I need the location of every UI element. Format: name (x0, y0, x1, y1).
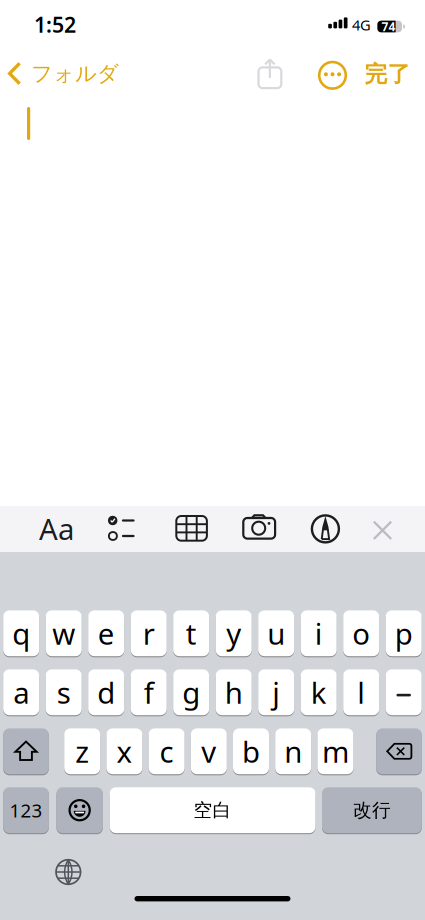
staticText: b (242, 732, 260, 771)
staticText: n (284, 732, 302, 771)
button[interactable]: r (131, 609, 167, 657)
button[interactable]: 完了 (364, 60, 410, 88)
staticText: k (311, 673, 327, 712)
staticText: x (116, 732, 132, 771)
button[interactable]: e (88, 609, 124, 657)
staticText: i (315, 614, 323, 653)
button[interactable]: f (131, 668, 167, 716)
button[interactable]: m (317, 727, 353, 775)
button[interactable]: z (64, 727, 100, 775)
staticText: v (201, 732, 216, 771)
staticText: l (357, 673, 365, 712)
button[interactable]: c (149, 727, 185, 775)
button[interactable]: k (301, 668, 337, 716)
staticText: 74 (381, 19, 395, 34)
staticText: z (75, 732, 89, 771)
button[interactable]: n (275, 727, 311, 775)
button[interactable]: t (173, 609, 209, 657)
button[interactable]: g (173, 668, 209, 716)
staticText: フォルダ (31, 61, 119, 87)
staticText: w (52, 614, 75, 653)
button[interactable]: s (46, 668, 82, 716)
staticText: r (143, 614, 155, 653)
button[interactable]: w (46, 609, 82, 657)
staticText: q (12, 614, 30, 653)
staticText: 完了 (364, 60, 410, 88)
button[interactable]: u (258, 609, 294, 657)
staticText: h (225, 673, 243, 712)
button[interactable]: 改行 (322, 786, 422, 834)
staticText: 空白 (194, 799, 232, 822)
button[interactable]: ー (386, 668, 422, 716)
button[interactable]: More (317, 60, 348, 91)
staticText: Aa (39, 509, 74, 548)
button[interactable]: 空白 (110, 786, 315, 834)
button[interactable]: j (258, 668, 294, 716)
staticText: f (144, 673, 154, 712)
button[interactable]: q (3, 609, 39, 657)
button[interactable]: Markup (303, 507, 347, 551)
staticText: e (98, 614, 115, 653)
button[interactable]: Dismiss keyboard (360, 508, 404, 552)
button[interactable]: フォルダ (7, 61, 123, 87)
button[interactable]: Checklist (99, 506, 143, 550)
staticText: 1:52 (34, 10, 76, 39)
button[interactable]: h (216, 668, 252, 716)
button[interactable]: Next keyboard (52, 856, 84, 888)
button[interactable]: a (3, 668, 39, 716)
button[interactable]: l (343, 668, 379, 716)
staticText: m (322, 732, 349, 771)
staticText: s (57, 673, 71, 712)
button[interactable]: y (216, 609, 252, 657)
button[interactable]: 123 (3, 786, 49, 834)
staticText: 123 (9, 798, 42, 823)
button[interactable]: Table (170, 506, 214, 550)
button[interactable]: v (191, 727, 227, 775)
staticText: u (267, 614, 285, 653)
staticText: o (352, 614, 370, 653)
button[interactable]: Format (34, 506, 78, 550)
staticText: y (226, 614, 241, 653)
staticText: 4G (352, 15, 371, 35)
staticText: j (272, 673, 280, 712)
button[interactable]: Camera (237, 506, 281, 550)
button[interactable]: Delete (376, 727, 422, 775)
staticText: g (182, 673, 200, 712)
button[interactable]: x (106, 727, 142, 775)
staticText: 改行 (353, 799, 391, 822)
staticText: c (160, 732, 174, 771)
staticText: a (13, 673, 29, 712)
button[interactable]: d (88, 668, 124, 716)
button[interactable]: b (233, 727, 269, 775)
button[interactable]: p (386, 609, 422, 657)
button[interactable]: i (301, 609, 337, 657)
button[interactable]: o (343, 609, 379, 657)
button[interactable]: Share (254, 53, 285, 93)
button[interactable]: Shift (3, 727, 49, 775)
staticText: t (186, 614, 197, 653)
staticText: p (395, 614, 413, 653)
staticText: d (97, 673, 115, 712)
button[interactable]: Emoji (56, 786, 103, 834)
